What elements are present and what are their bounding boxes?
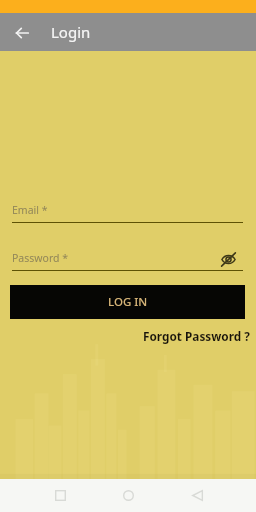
button[interactable]: Email * (0, 202, 256, 223)
button[interactable]: LOG IN (10, 285, 245, 319)
button[interactable]: Password * (0, 250, 256, 271)
button[interactable]: Home (112, 479, 144, 511)
button[interactable]: Back (5, 16, 38, 49)
staticText: LOG IN (108, 294, 148, 310)
staticText: Email * (12, 203, 48, 217)
button[interactable]: Forgot Password ? (143, 328, 256, 344)
button[interactable]: Toggle password visibility (219, 251, 237, 267)
staticText: Password * (12, 251, 69, 265)
button[interactable]: Recents (44, 479, 76, 511)
staticText: Login (51, 22, 91, 42)
button[interactable]: Back (181, 479, 213, 511)
